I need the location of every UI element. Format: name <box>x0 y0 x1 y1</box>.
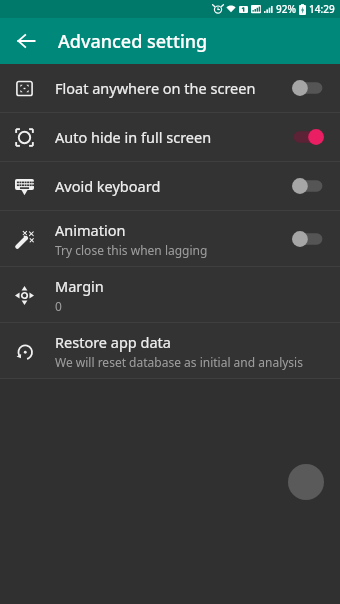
staticText: Float anywhere on the screen <box>55 78 256 98</box>
staticText: 0 <box>55 298 62 314</box>
button[interactable]: Float anywhere on the screen <box>0 64 340 112</box>
staticText: Advanced setting <box>58 29 208 54</box>
staticText: Animation <box>55 220 126 240</box>
staticText: Margin <box>55 276 104 296</box>
button[interactable]: Animation <box>0 211 340 266</box>
staticText: 92% <box>276 2 296 16</box>
button[interactable]: Auto hide in full screen <box>0 113 340 161</box>
staticText: Auto hide in full screen <box>55 127 212 147</box>
button[interactable]: Avoid keyboard <box>0 162 340 210</box>
button[interactable]: Toggle on <box>290 126 326 148</box>
button[interactable]: Add <box>288 464 324 500</box>
staticText: Restore app data <box>55 332 171 352</box>
button[interactable]: Toggle off <box>290 175 326 197</box>
staticText: We will reset database as initial and an… <box>55 354 303 370</box>
staticText: Try close this when lagging <box>55 242 208 258</box>
button[interactable]: Restore app data <box>0 323 340 378</box>
button[interactable]: Back <box>6 21 46 61</box>
button[interactable]: Toggle off <box>290 228 326 250</box>
staticText: 14:29 <box>309 2 335 16</box>
button[interactable]: Toggle off <box>290 77 326 99</box>
button[interactable]: Margin <box>0 267 340 322</box>
staticText: Avoid keyboard <box>55 176 161 196</box>
